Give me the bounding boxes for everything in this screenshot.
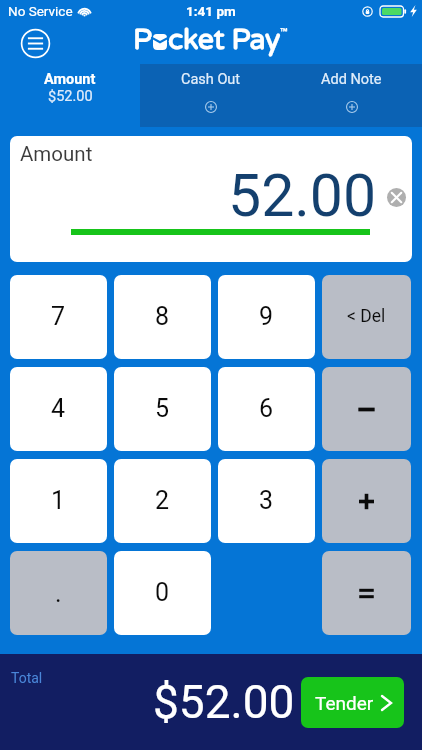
staticText: Add Note: [321, 71, 382, 88]
button[interactable]: 5: [114, 367, 211, 451]
button[interactable]: 2: [114, 459, 211, 543]
staticText: 5: [155, 394, 170, 423]
staticText: 9: [259, 302, 274, 331]
staticText: P: [133, 23, 152, 57]
button[interactable]: Cash Out: [140, 64, 281, 127]
staticText: Tender: [315, 692, 374, 714]
staticText: $52.00: [153, 675, 295, 729]
button[interactable]: 9: [218, 275, 315, 359]
button[interactable]: 4: [10, 367, 107, 451]
staticText: 3: [259, 486, 274, 515]
button[interactable]: minus: [322, 367, 411, 451]
staticText: 52.00: [228, 161, 377, 230]
button[interactable]: 3: [218, 459, 315, 543]
staticText: 8: [155, 302, 170, 331]
button[interactable]: Add Note: [281, 64, 422, 127]
button[interactable]: Tender: [301, 677, 404, 728]
button[interactable]: 1: [10, 459, 107, 543]
staticText: Total: [11, 670, 43, 686]
button[interactable]: plus: [322, 459, 411, 543]
button[interactable]: Amount: [10, 136, 412, 262]
staticText: cket Pay: [168, 23, 280, 57]
staticText: No Service: [8, 3, 73, 19]
staticText: Cash Out: [181, 71, 241, 88]
staticText: 0: [155, 578, 170, 607]
button[interactable]: 8: [114, 275, 211, 359]
staticText: Amount: [44, 71, 96, 88]
staticText: $52.00: [48, 88, 93, 105]
button[interactable]: 7: [10, 275, 107, 359]
button[interactable]: Amount: [0, 64, 140, 127]
button[interactable]: Clear amount: [387, 188, 406, 207]
button[interactable]: equals: [322, 551, 411, 635]
button[interactable]: 6: [218, 367, 315, 451]
staticText: 6: [259, 394, 274, 423]
staticText: < Del: [347, 306, 386, 327]
staticText: 4: [51, 394, 66, 423]
staticText: 2: [155, 486, 170, 515]
staticText: .: [55, 579, 62, 608]
button[interactable]: 0: [114, 551, 211, 635]
staticText: Amount: [20, 142, 93, 166]
staticText: 7: [51, 302, 66, 331]
button[interactable]: Menu: [20, 28, 51, 59]
staticText: ™: [280, 27, 288, 37]
staticText: 1: [51, 486, 66, 515]
staticText: 1:41 pm: [186, 3, 236, 19]
button[interactable]: .: [10, 551, 107, 635]
button[interactable]: < Del: [322, 275, 411, 359]
